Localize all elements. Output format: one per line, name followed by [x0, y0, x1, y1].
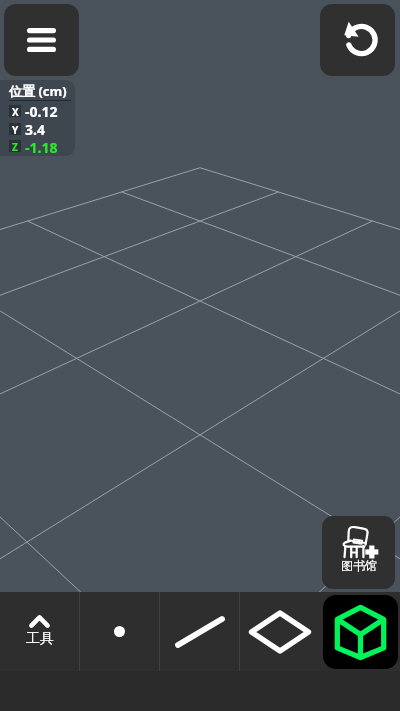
button[interactable]: Point: [80, 592, 159, 671]
staticText: X: [12, 105, 19, 117]
staticText: 图书馆: [341, 558, 377, 573]
button[interactable]: Plane: [240, 592, 319, 671]
button[interactable]: Solid: [323, 595, 398, 669]
staticText: -0.12: [25, 102, 58, 120]
staticText: Z: [12, 140, 18, 152]
button[interactable]: Undo: [320, 4, 395, 76]
button[interactable]: Line: [160, 592, 239, 671]
staticText: Y: [12, 123, 19, 135]
button[interactable]: 工具: [0, 592, 79, 671]
staticText: -1.18: [25, 138, 58, 154]
button[interactable]: 图书馆: [322, 516, 395, 589]
button[interactable]: Menu: [4, 4, 79, 76]
staticText: 3.4: [25, 120, 45, 138]
staticText: 位置 (cm): [9, 82, 67, 100]
staticText: 工具: [26, 630, 54, 648]
